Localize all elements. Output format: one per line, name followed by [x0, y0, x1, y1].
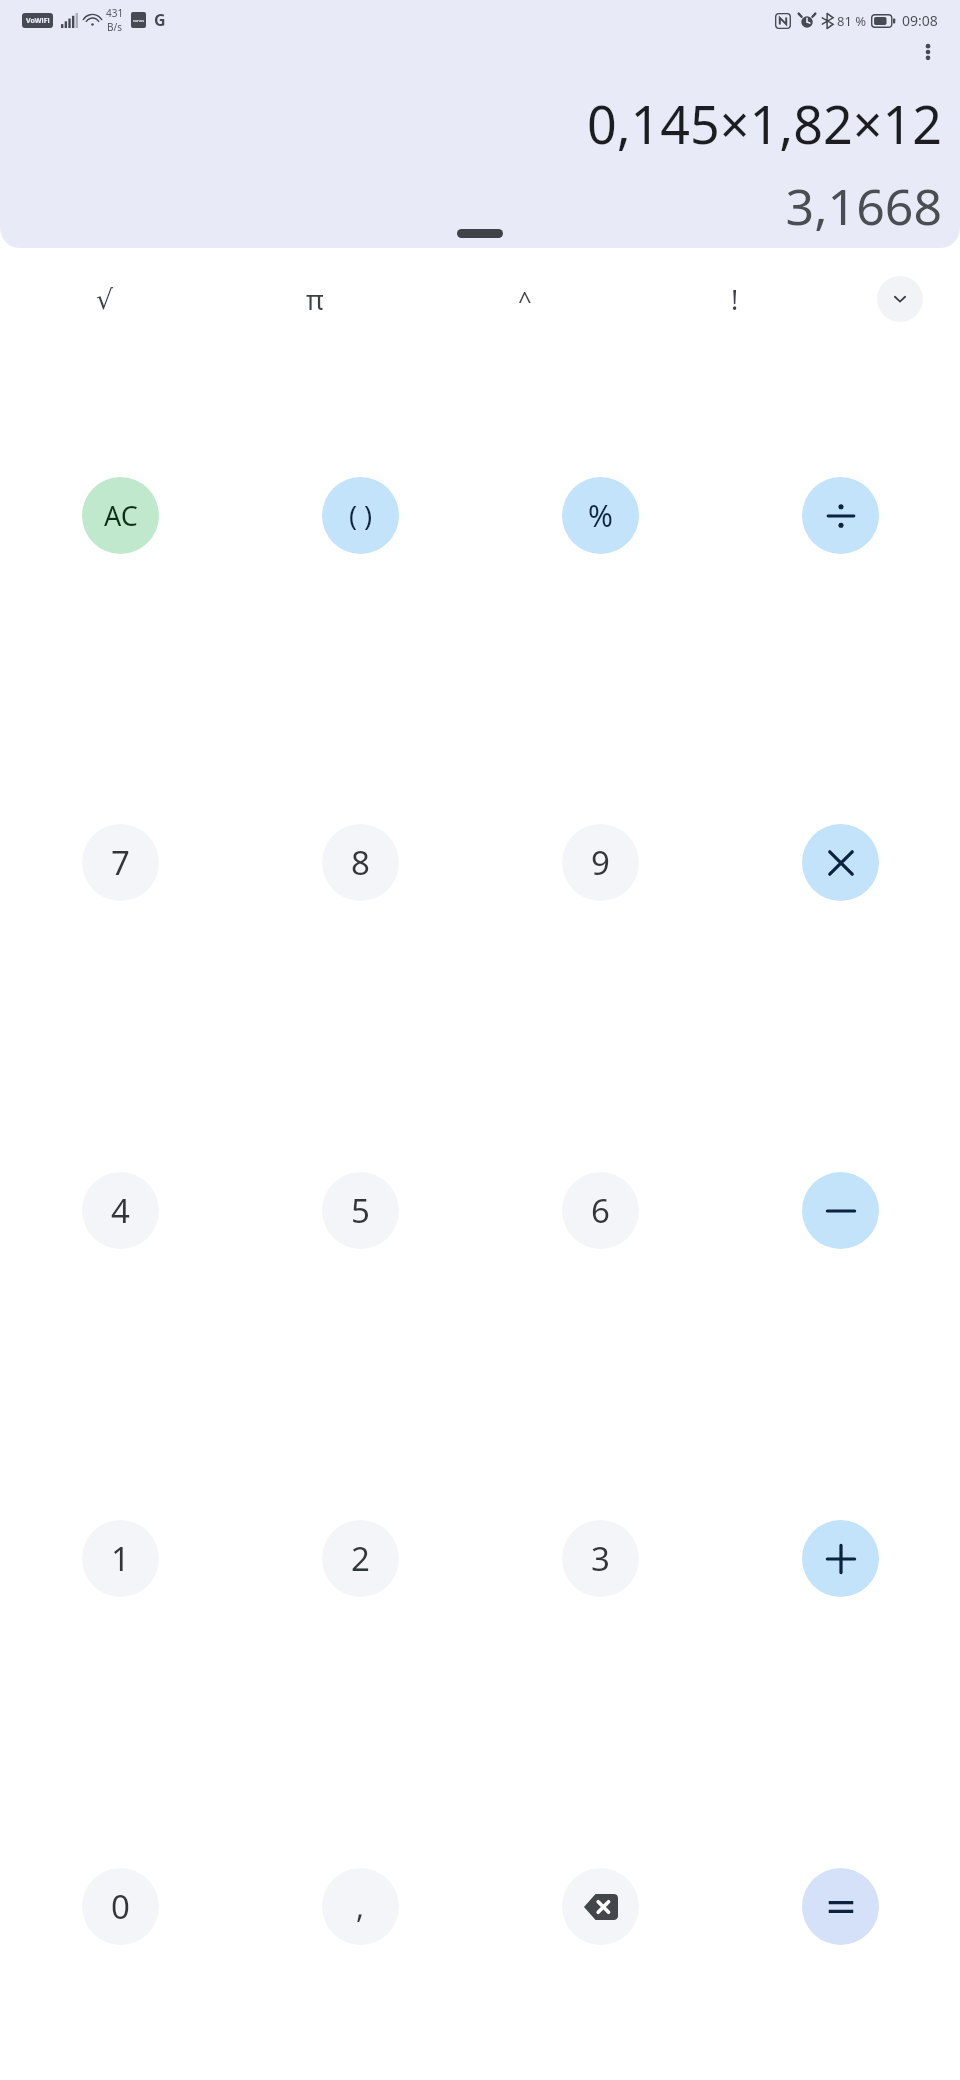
button[interactable]: Backspace [562, 1868, 639, 1945]
staticText: 0 [111, 1884, 130, 1929]
button[interactable]: 6 [562, 1172, 639, 1249]
button[interactable]: More options [906, 30, 950, 74]
button[interactable]: AC [82, 477, 159, 554]
button[interactable]: 4 [82, 1172, 159, 1249]
button[interactable]: More functions [877, 276, 923, 322]
staticText: ^ [518, 283, 532, 316]
staticText: 6 [591, 1188, 610, 1233]
staticText: 4 [111, 1188, 130, 1233]
button[interactable]: 9 [562, 824, 639, 901]
button[interactable]: ( ) [322, 477, 399, 554]
staticText: B/s [107, 20, 123, 34]
staticText: % [588, 495, 613, 536]
button[interactable]: 5 [322, 1172, 399, 1249]
button[interactable]: ! [630, 270, 840, 328]
staticText: , [356, 1886, 365, 1927]
button[interactable]: Plus [802, 1520, 879, 1597]
staticText: 8 [351, 840, 370, 885]
staticText: 3,1668 [785, 172, 942, 240]
button[interactable]: 8 [322, 824, 399, 901]
button[interactable]: Equals [802, 1868, 879, 1945]
staticText: 9 [591, 840, 610, 885]
button[interactable]: Multiply [802, 824, 879, 901]
button[interactable]: Minus [802, 1172, 879, 1249]
staticText: sonos [133, 18, 145, 23]
staticText: G [154, 9, 166, 31]
staticText: √ [96, 284, 114, 315]
button[interactable]: Divide [802, 477, 879, 554]
staticText: 7 [111, 840, 130, 885]
button[interactable]: √ [0, 270, 210, 328]
staticText: 3 [591, 1536, 610, 1581]
staticText: 431 [106, 6, 124, 20]
staticText: 2 [351, 1536, 370, 1581]
button[interactable]: 1 [82, 1520, 159, 1597]
staticText: AC [104, 497, 138, 534]
button[interactable]: , [322, 1868, 399, 1945]
staticText: ( ) [349, 497, 373, 534]
staticText: 0,145×1,82×12 [586, 88, 942, 159]
button[interactable]: 0 [82, 1868, 159, 1945]
staticText: 5 [351, 1188, 370, 1233]
button[interactable]: π [210, 270, 420, 328]
staticText: π [306, 281, 324, 318]
staticText: 81 % [837, 12, 867, 30]
staticText: 1 [111, 1536, 130, 1581]
staticText: 09:08 [902, 11, 938, 30]
staticText: ! [731, 281, 739, 318]
other: Expand history [457, 229, 503, 238]
button[interactable]: ^ [420, 270, 630, 328]
button[interactable]: 2 [322, 1520, 399, 1597]
button[interactable]: % [562, 477, 639, 554]
staticText: VoWiFi [26, 16, 50, 26]
button[interactable]: 3 [562, 1520, 639, 1597]
button[interactable]: 7 [82, 824, 159, 901]
